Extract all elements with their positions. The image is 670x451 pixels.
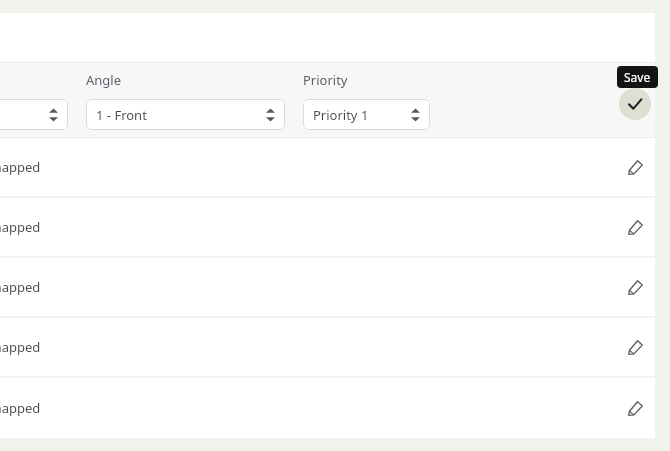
staticText: Unmapped bbox=[0, 278, 41, 296]
button[interactable]: Unmapped bbox=[0, 258, 655, 316]
button[interactable]: Select option bbox=[0, 99, 68, 130]
button[interactable]: Edit bbox=[621, 394, 649, 422]
staticText: Save bbox=[624, 69, 651, 85]
staticText: Unmapped bbox=[0, 399, 41, 417]
button[interactable]: Edit bbox=[621, 213, 649, 241]
staticText: Unmapped bbox=[0, 338, 41, 356]
staticText: Unmapped bbox=[0, 218, 41, 236]
button[interactable]: Edit bbox=[621, 153, 649, 181]
staticText: 1 - Front bbox=[96, 106, 147, 124]
staticText: Unmapped bbox=[0, 158, 41, 176]
staticText: Priority bbox=[303, 71, 348, 89]
button[interactable]: Unmapped bbox=[0, 318, 655, 376]
button[interactable]: Edit bbox=[621, 273, 649, 301]
staticText: Priority 1 bbox=[313, 106, 369, 124]
button[interactable]: Priority select bbox=[303, 99, 430, 130]
button[interactable]: Save bbox=[619, 88, 651, 120]
button[interactable]: Angle select bbox=[86, 99, 285, 130]
button[interactable]: Unmapped bbox=[0, 198, 655, 256]
button[interactable]: Unmapped bbox=[0, 378, 655, 438]
staticText: Angle bbox=[86, 71, 122, 89]
button[interactable]: Edit bbox=[621, 333, 649, 361]
button[interactable]: Unmapped bbox=[0, 138, 655, 196]
